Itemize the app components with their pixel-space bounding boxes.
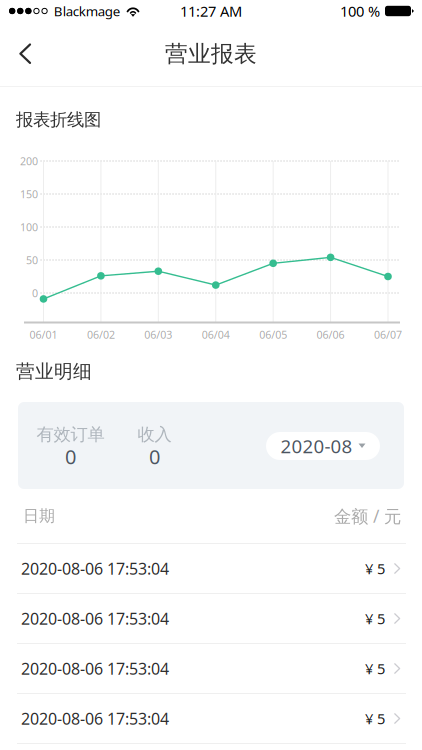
staticText: 0 [32, 286, 38, 300]
button[interactable]: Back [0, 22, 46, 86]
staticText: 2020-08-06 17:53:04 [21, 608, 169, 629]
staticText: 06/04 [202, 327, 230, 342]
staticText: 06/07 [374, 327, 402, 342]
button[interactable]: 2020-08 [266, 432, 380, 460]
staticText: Blackmage [54, 2, 121, 20]
staticText: 收入 [137, 424, 171, 445]
staticText: 营业报表 [165, 40, 257, 68]
staticText: 金额 / 元 [334, 504, 401, 527]
button[interactable]: 2020-08-06 17:53:04 [0, 644, 422, 694]
button[interactable]: 2020-08-06 17:53:04 [0, 594, 422, 644]
staticText: 2020-08 [280, 434, 352, 458]
staticText: 营业明细 [16, 360, 92, 383]
staticText: 100 % [340, 1, 380, 21]
staticText: ¥ 5 [365, 659, 385, 678]
staticText: 06/02 [87, 327, 115, 342]
button[interactable]: 2020-08-06 17:53:04 [0, 694, 422, 744]
staticText: ¥ 5 [365, 559, 385, 578]
staticText: 06/03 [144, 327, 172, 342]
staticText: 日期 [23, 506, 55, 526]
staticText: 2020-08-06 17:53:04 [21, 558, 169, 579]
staticText: ¥ 5 [365, 609, 385, 628]
staticText: 报表折线图 [16, 109, 101, 130]
button[interactable]: 2020-08-06 17:53:04 [0, 544, 422, 594]
staticText: 11:27 AM [180, 1, 242, 21]
staticText: 150 [20, 187, 38, 201]
staticText: 06/06 [317, 327, 345, 342]
staticText: 有效订单 [36, 424, 104, 445]
staticText: 0 [65, 443, 76, 470]
staticText: 06/05 [259, 327, 287, 342]
staticText: 2020-08-06 17:53:04 [21, 658, 169, 679]
staticText: 200 [20, 154, 38, 168]
staticText: 2020-08-06 17:53:04 [21, 708, 169, 729]
staticText: 100 [20, 220, 38, 234]
staticText: 0 [149, 443, 160, 470]
staticText: 50 [26, 253, 38, 267]
staticText: 06/01 [29, 327, 57, 342]
staticText: ¥ 5 [365, 709, 385, 728]
